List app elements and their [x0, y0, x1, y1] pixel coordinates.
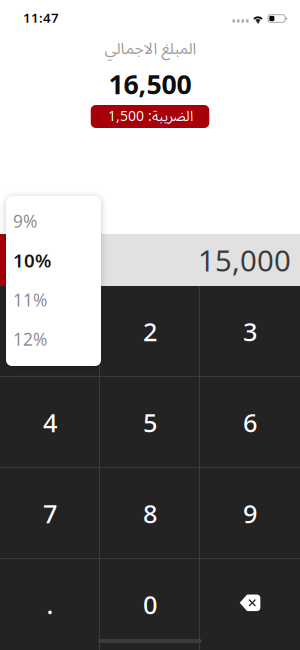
staticText: 15,000 [198, 240, 291, 279]
button[interactable]: 1 [0, 286, 100, 377]
staticText: 6 [243, 406, 257, 439]
button[interactable]: 12% [6, 319, 101, 359]
staticText: 0 [143, 588, 157, 621]
staticText: 10% [13, 248, 51, 273]
staticText: 1 [43, 315, 57, 348]
button[interactable]: الضريبة: 1,500 [91, 105, 209, 128]
staticText: 5 [143, 406, 157, 439]
button[interactable]: 11% [6, 280, 101, 319]
staticText: 4 [43, 406, 57, 439]
staticText: 11% [13, 288, 47, 311]
staticText: 10% [27, 245, 73, 275]
button[interactable]: 3 [200, 286, 300, 377]
button[interactable]: . [0, 559, 100, 650]
button[interactable] [200, 559, 300, 650]
button[interactable]: 10% [6, 241, 101, 280]
button[interactable]: 2 [100, 286, 200, 377]
button[interactable]: 8 [100, 468, 200, 559]
button[interactable]: 6 [200, 377, 300, 468]
button[interactable]: 7 [0, 468, 100, 559]
staticText: 11:47 [23, 9, 59, 26]
button[interactable]: 0 [100, 559, 200, 650]
button[interactable]: 9% [6, 201, 101, 241]
staticText: 9 [243, 497, 257, 530]
staticText: . [46, 588, 53, 621]
button[interactable]: 4 [0, 377, 100, 468]
staticText: 16,500 [108, 66, 191, 102]
staticText: الضريبة: 1,500 [107, 102, 192, 131]
button[interactable]: 10% [0, 234, 100, 286]
button[interactable]: 5 [100, 377, 200, 468]
staticText: 3 [243, 315, 257, 348]
staticText: المبلغ الاجمالي [104, 32, 196, 66]
staticText: 2 [143, 315, 157, 348]
button[interactable]: 9 [200, 468, 300, 559]
staticText: 8 [143, 497, 157, 530]
staticText: 12% [13, 328, 47, 351]
staticText: 7 [43, 497, 57, 530]
staticText: 9% [13, 209, 37, 232]
